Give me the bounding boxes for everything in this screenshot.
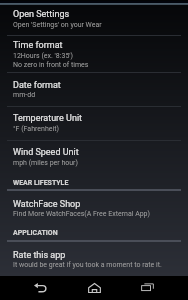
button[interactable] bbox=[0, 242, 188, 275]
staticText: Open 'Settings' on your Wear bbox=[13, 21, 102, 29]
button[interactable] bbox=[0, 73, 188, 106]
staticText: Date format bbox=[13, 80, 61, 91]
staticText: mph (miles per hour) bbox=[13, 159, 78, 167]
button[interactable]: Home bbox=[74, 276, 114, 300]
staticText: WatchFace Shop bbox=[13, 199, 81, 210]
button[interactable] bbox=[0, 191, 188, 224]
staticText: Time format bbox=[13, 40, 63, 51]
staticText: APPLICATION bbox=[13, 229, 58, 237]
staticText: Rate this app bbox=[13, 250, 66, 261]
staticText: Wind Speed Unit bbox=[13, 147, 79, 158]
button[interactable] bbox=[0, 36, 188, 72]
staticText: 12Hours (ex. '8:35') bbox=[13, 52, 73, 60]
staticText: WEAR LIFESTYLE bbox=[13, 179, 69, 187]
staticText: Temperature Unit bbox=[13, 113, 83, 124]
staticText: mm-dd bbox=[13, 91, 36, 99]
staticText: It would be great if you took a moment t… bbox=[13, 261, 162, 269]
staticText: Open Settings bbox=[13, 9, 70, 20]
button[interactable]: Recents bbox=[127, 275, 167, 299]
staticText: No zero in front of times bbox=[13, 61, 89, 69]
button[interactable]: Back bbox=[20, 276, 60, 300]
button[interactable] bbox=[0, 107, 188, 140]
button[interactable] bbox=[0, 141, 188, 174]
button[interactable] bbox=[0, 5, 188, 35]
staticText: °F (Fahrenheit) bbox=[13, 125, 59, 133]
staticText: Find More WatchFaces(A Free External App… bbox=[13, 210, 150, 218]
